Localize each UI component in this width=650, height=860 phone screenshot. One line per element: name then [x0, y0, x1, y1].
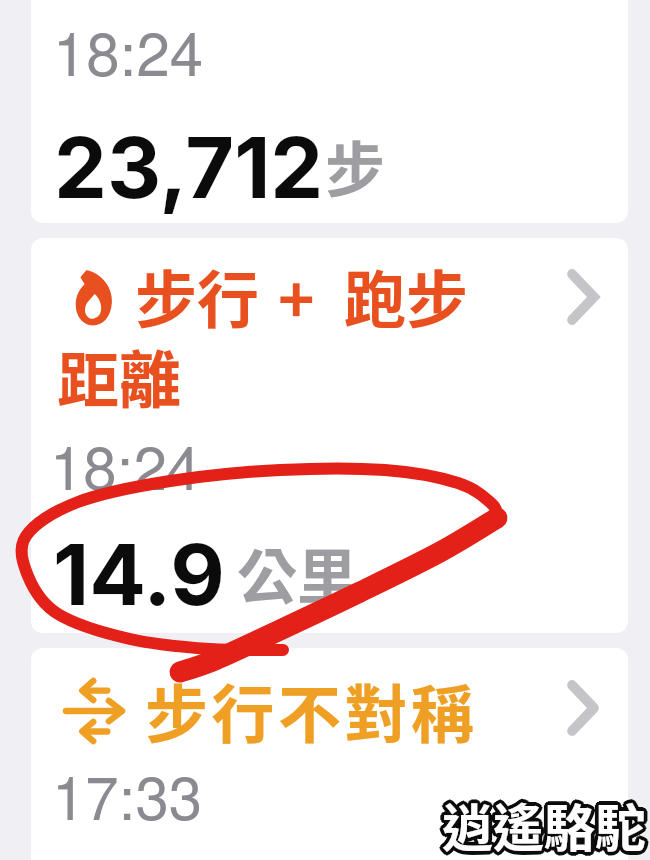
staticText: 逍遙駱駝: [444, 787, 649, 860]
button[interactable]: Open walking asymmetry: [545, 670, 621, 746]
staticText: 逍遙駱駝: [441, 791, 646, 860]
staticText: 距離: [57, 331, 182, 421]
staticText: 逍遙駱駝: [442, 788, 647, 860]
button[interactable]: 步行不對稱: [31, 648, 628, 860]
staticText: 逍遙駱駝: [441, 790, 646, 860]
staticText: 跑步: [344, 251, 469, 341]
staticText: 逍遙駱駝: [439, 789, 644, 860]
staticText: 逍遙駱駝: [439, 790, 644, 860]
staticText: 逍遙駱駝: [444, 785, 649, 859]
staticText: 逍遙駱駝: [441, 789, 646, 860]
staticText: 逍遙駱駝: [439, 788, 644, 860]
staticText: 逍遙駱駝: [445, 787, 650, 860]
staticText: 逍遙駱駝: [444, 789, 649, 860]
staticText: 17:33: [52, 751, 203, 837]
staticText: 逍遙駱駝: [440, 785, 645, 859]
staticText: 18:24: [53, 7, 204, 93]
staticText: 逍遙駱駝: [442, 792, 647, 860]
staticText: 逍遙駱駝: [444, 790, 649, 860]
staticText: 逍遙駱駝: [441, 788, 646, 860]
staticText: 逍遙駱駝: [442, 786, 647, 860]
staticText: 逍遙駱駝: [443, 789, 648, 860]
staticText: 逍遙駱駝: [443, 787, 648, 860]
staticText: 逍遙駱駝: [440, 788, 645, 860]
staticText: 逍遙駱駝: [443, 788, 648, 860]
staticText: 逍遙駱駝: [442, 785, 647, 859]
staticText: 逍遙駱駝: [441, 785, 646, 859]
staticText: 逍遙駱駝: [440, 791, 645, 860]
staticText: 逍遙駱駝: [439, 786, 644, 860]
staticText: 18:24: [50, 421, 201, 507]
staticText: 逍遙駱駝: [440, 789, 645, 860]
staticText: 逍遙駱駝: [442, 791, 647, 860]
staticText: 逍遙駱駝: [442, 788, 647, 860]
staticText: 逍遙駱駝: [445, 789, 650, 860]
staticText: 逍遙駱駝: [444, 791, 649, 860]
button[interactable]: Open walking and running distance: [545, 259, 621, 335]
staticText: 逍遙駱駝: [444, 786, 649, 860]
staticText: 23,712: [54, 117, 324, 219]
staticText: 步: [325, 122, 385, 209]
staticText: 逍遙駱駝: [442, 789, 647, 860]
staticText: 逍遙駱駝: [443, 786, 648, 860]
staticText: 逍遙駱駝: [442, 787, 647, 860]
staticText: 逍遙駱駝: [440, 790, 645, 860]
staticText: 逍遙駱駝: [441, 787, 646, 860]
button[interactable]: 步行: [31, 238, 628, 633]
staticText: 逍遙駱駝: [442, 790, 647, 860]
staticText: 步行不對稱: [145, 664, 478, 755]
staticText: 逍遙駱駝: [440, 786, 645, 860]
staticText: 逍遙駱駝: [441, 786, 646, 860]
staticText: 逍遙駱駝: [438, 788, 643, 860]
staticText: 步行: [135, 251, 260, 341]
staticText: 公里: [237, 529, 357, 616]
staticText: 逍遙駱駝: [444, 788, 649, 860]
staticText: 逍遙駱駝: [446, 788, 650, 860]
staticText: +: [278, 251, 315, 341]
staticText: 逍遙駱駝: [445, 790, 650, 860]
staticText: 逍遙駱駝: [443, 785, 648, 859]
button[interactable]: 18:24: [31, 0, 628, 223]
staticText: 逍遙駱駝: [442, 784, 647, 858]
staticText: 14.9: [53, 524, 225, 626]
staticText: 逍遙駱駝: [445, 786, 650, 860]
staticText: 逍遙駱駝: [443, 791, 648, 860]
staticText: 逍遙駱駝: [440, 787, 645, 860]
staticText: 逍遙駱駝: [439, 787, 644, 860]
staticText: 逍遙駱駝: [443, 790, 648, 860]
staticText: 逍遙駱駝: [445, 788, 650, 860]
